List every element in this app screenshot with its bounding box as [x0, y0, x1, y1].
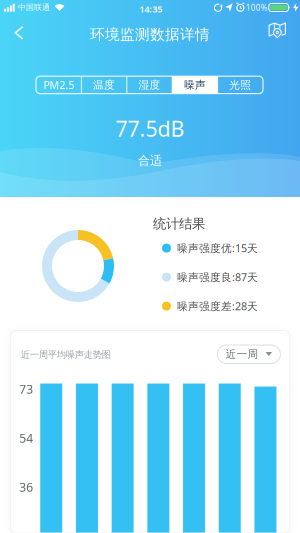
staticText: 14:35: [139, 3, 162, 15]
staticText: 73: [19, 381, 33, 397]
staticText: 环境监测数据详情: [90, 25, 210, 43]
button[interactable]: 温度: [81, 76, 127, 94]
staticText: 噪声强度良:87天: [177, 270, 258, 284]
staticText: 光照: [229, 78, 251, 91]
staticText: 77.5dB: [115, 114, 184, 143]
staticText: 温度: [93, 78, 115, 91]
staticText: 合适: [138, 153, 162, 168]
staticText: 噪声强度优:15天: [177, 241, 258, 255]
staticText: 噪声: [184, 78, 206, 91]
staticText: 统计结果: [153, 215, 205, 232]
staticText: 36: [19, 479, 33, 495]
button[interactable]: 近一周: [217, 345, 280, 363]
button[interactable]: 地图: [262, 16, 292, 44]
staticText: 100%: [246, 2, 268, 13]
staticText: 湿度: [138, 78, 160, 91]
staticText: 中国联通: [18, 2, 50, 12]
button[interactable]: 光照: [218, 76, 263, 94]
button[interactable]: 返回: [6, 18, 32, 48]
button[interactable]: 湿度: [127, 76, 172, 94]
button[interactable]: PM2.5: [36, 76, 81, 94]
staticText: 噪声强度差:28天: [177, 299, 258, 313]
button[interactable]: 噪声: [172, 76, 218, 94]
staticText: 近一周: [226, 348, 259, 361]
staticText: 54: [19, 430, 33, 446]
staticText: 近一周平均噪声走势图: [21, 349, 111, 360]
staticText: PM2.5: [43, 78, 74, 92]
